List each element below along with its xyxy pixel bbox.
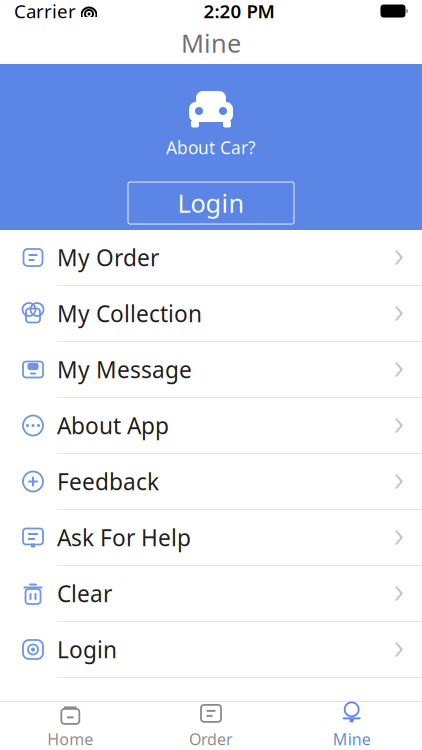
staticText: Feedback: [57, 466, 159, 496]
button[interactable]: My Collection: [0, 286, 422, 342]
button[interactable]: Login: [0, 622, 422, 678]
staticText: Home: [47, 728, 93, 750]
staticText: Mine: [333, 728, 371, 750]
staticText: About Car?: [166, 136, 256, 159]
button[interactable]: My Order: [0, 230, 422, 286]
staticText: Carrier: [14, 0, 76, 23]
staticText: My Message: [57, 354, 192, 384]
staticText: 2:20 PM: [203, 0, 274, 23]
staticText: Ask For Help: [57, 522, 191, 552]
staticText: My Order: [57, 242, 159, 272]
button[interactable]: Feedback: [0, 454, 422, 510]
button[interactable]: Login: [128, 182, 294, 224]
staticText: About App: [57, 410, 169, 440]
button[interactable]: Mine: [281, 702, 422, 750]
staticText: Login: [177, 186, 244, 220]
staticText: Login: [57, 634, 117, 664]
button[interactable]: About App: [0, 398, 422, 454]
button[interactable]: Ask For Help: [0, 510, 422, 566]
button[interactable]: Home: [0, 702, 141, 750]
staticText: Mine: [181, 26, 241, 60]
button[interactable]: My Message: [0, 342, 422, 398]
staticText: My Collection: [57, 298, 202, 328]
button[interactable]: Clear: [0, 566, 422, 622]
staticText: Order: [189, 728, 233, 750]
button[interactable]: Order: [141, 702, 281, 750]
staticText: Clear: [57, 578, 112, 608]
